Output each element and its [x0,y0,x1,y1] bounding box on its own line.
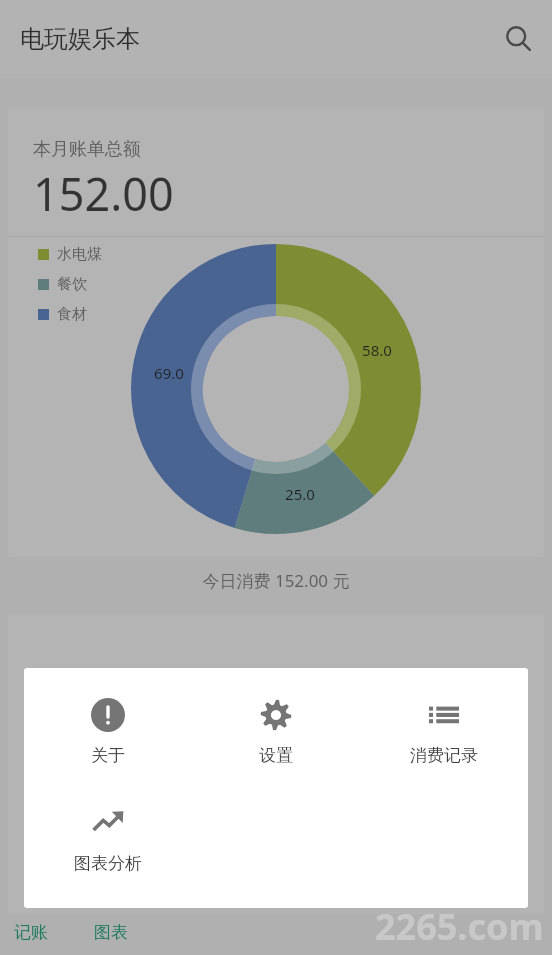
staticText: 2265.com [375,902,544,951]
button[interactable]: 设置 [192,690,360,774]
staticText: 25.0 [285,484,315,504]
button[interactable]: Search [494,14,544,64]
button[interactable]: 关于 [24,690,192,774]
staticText: 水电煤 [57,245,102,264]
staticText: 图表 [94,922,128,943]
staticText: 本月账单总额 [33,138,141,161]
staticText: 关于 [91,745,125,766]
staticText: 食材 [57,305,87,324]
staticText: 消费记录 [410,745,478,766]
staticText: 图表分析 [74,853,142,874]
staticText: 设置 [259,745,293,766]
staticText: 餐饮 [57,275,87,294]
staticText: 记账 [14,922,48,943]
button[interactable]: 图表分析 [24,798,192,882]
button[interactable]: 消费记录 [360,690,528,774]
staticText: 152.00 [33,163,174,224]
staticText: 电玩娱乐本 [20,24,140,54]
staticText: 今日消费 152.00 元 [0,569,552,592]
staticText: 69.0 [154,363,184,383]
staticText: 58.0 [362,340,392,360]
